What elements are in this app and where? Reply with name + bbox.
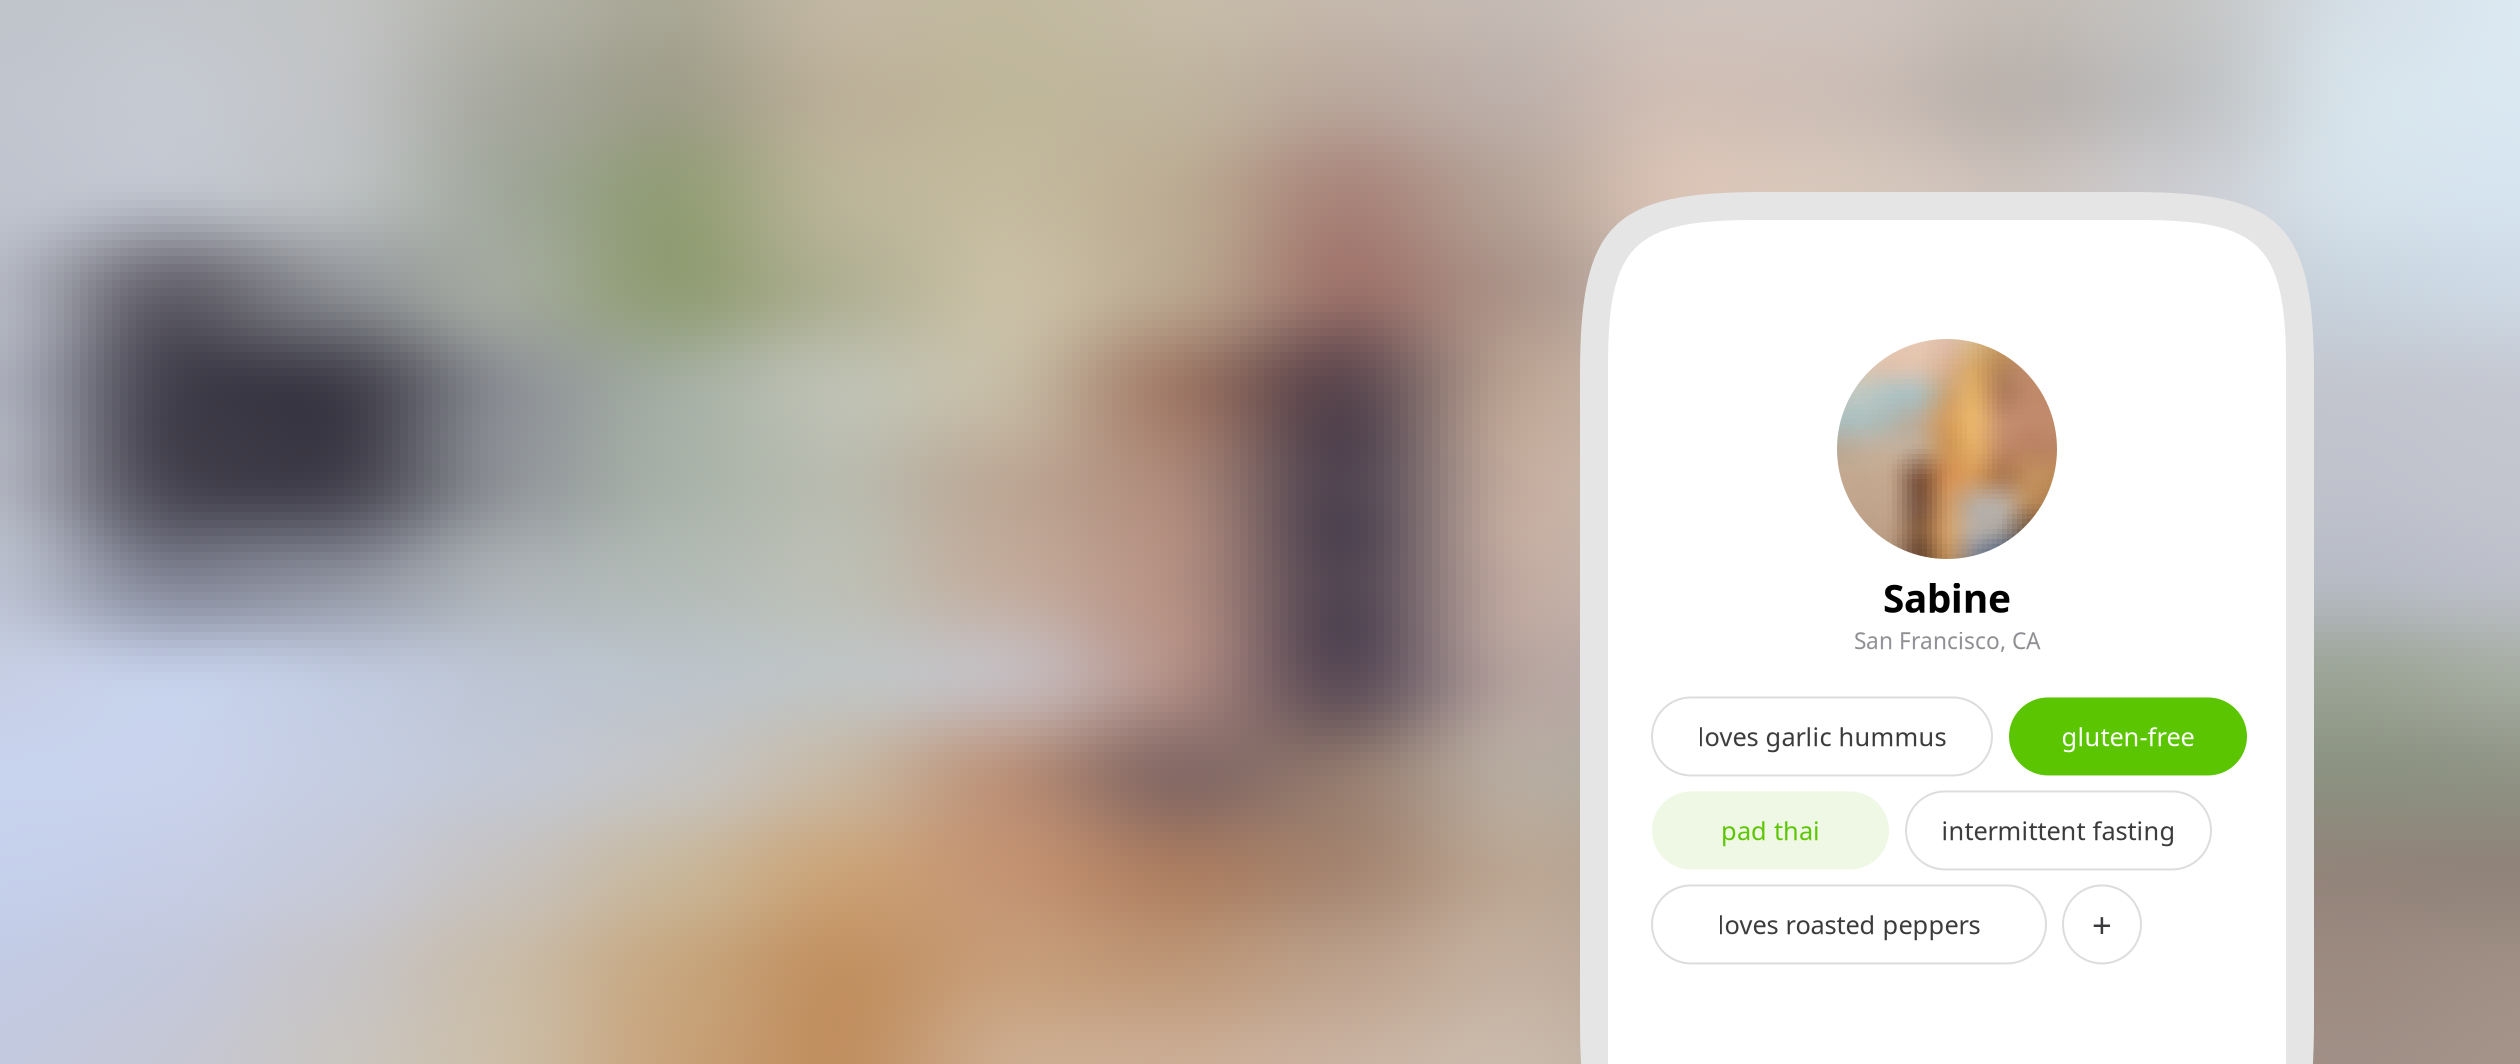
- button[interactable]: loves garlic hummus: [1652, 697, 1992, 775]
- button[interactable]: intermittent fasting: [1906, 791, 2211, 869]
- staticText: gluten-free: [2061, 720, 2194, 753]
- staticText: Sabine: [1883, 572, 2011, 623]
- button[interactable]: Add interest: [2063, 885, 2141, 963]
- button[interactable]: gluten-free: [2009, 697, 2247, 775]
- staticText: San Francisco, CA: [1854, 625, 2040, 655]
- staticText: intermittent fasting: [1941, 814, 2175, 847]
- staticText: pad thai: [1721, 814, 1820, 847]
- staticText: +: [2092, 901, 2112, 947]
- button[interactable]: loves roasted peppers: [1652, 885, 2046, 963]
- staticText: loves garlic hummus: [1697, 720, 1946, 753]
- button[interactable]: pad thai: [1652, 791, 1889, 869]
- staticText: loves roasted peppers: [1717, 908, 1980, 941]
